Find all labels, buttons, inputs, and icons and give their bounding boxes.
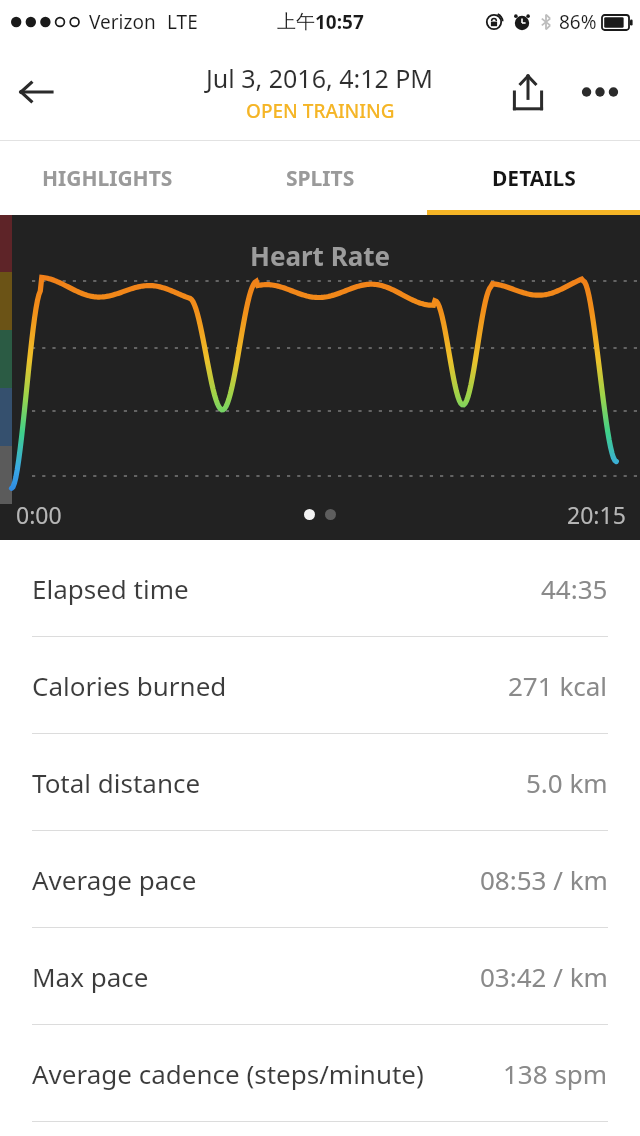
button[interactable]: Total distance: [0, 734, 640, 830]
button[interactable]: HIGHLIGHTS: [0, 141, 214, 215]
staticText: OPEN TRAINING: [246, 98, 395, 124]
staticText: Max pace: [32, 959, 149, 994]
staticText: HIGHLIGHTS: [42, 164, 173, 193]
button[interactable]: Max pace: [0, 928, 640, 1024]
staticText: 上午: [277, 10, 315, 34]
button[interactable]: DETAILS: [427, 141, 640, 215]
staticText: 08:53 / km: [480, 862, 608, 897]
staticText: Average pace: [32, 862, 197, 897]
button[interactable]: More options: [564, 56, 636, 128]
staticText: Verizon: [89, 9, 156, 35]
staticText: Total distance: [32, 765, 201, 800]
staticText: 10:57: [315, 9, 364, 35]
staticText: Calories burned: [32, 668, 227, 703]
button[interactable]: Share: [492, 56, 564, 128]
staticText: 03:42 / km: [480, 959, 608, 994]
button[interactable]: Elapsed time: [0, 540, 640, 636]
button[interactable]: Back: [0, 56, 72, 128]
button[interactable]: Average pace: [0, 831, 640, 927]
staticText: 271 kcal: [508, 668, 608, 703]
staticText: Elapsed time: [32, 571, 189, 606]
staticText: 0:00: [16, 499, 62, 530]
staticText: 86%: [559, 9, 597, 35]
staticText: 44:35: [541, 571, 608, 606]
button[interactable]: Average cadence (steps/minute): [0, 1025, 640, 1121]
staticText: SPLITS: [286, 164, 355, 193]
button[interactable]: Calories burned: [0, 637, 640, 733]
staticText: 138 spm: [503, 1056, 608, 1091]
staticText: DETAILS: [492, 164, 576, 193]
staticText: 20:15: [567, 499, 626, 530]
staticText: Heart Rate: [250, 238, 391, 273]
staticText: LTE: [167, 9, 198, 35]
staticText: Jul 3, 2016, 4:12 PM: [206, 61, 434, 95]
button[interactable]: SPLITS: [214, 141, 427, 215]
staticText: Average cadence (steps/minute): [32, 1056, 424, 1091]
staticText: 5.0 km: [526, 765, 608, 800]
